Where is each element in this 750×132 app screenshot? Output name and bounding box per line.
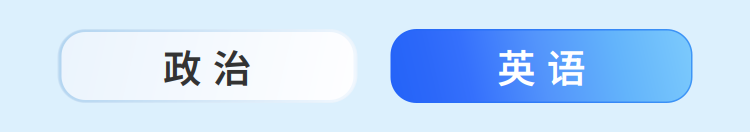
button[interactable]: 政治 <box>57 29 357 103</box>
button[interactable]: 英语 <box>390 29 692 103</box>
staticText: 政治 <box>163 38 252 94</box>
staticText: 英语 <box>497 38 586 94</box>
